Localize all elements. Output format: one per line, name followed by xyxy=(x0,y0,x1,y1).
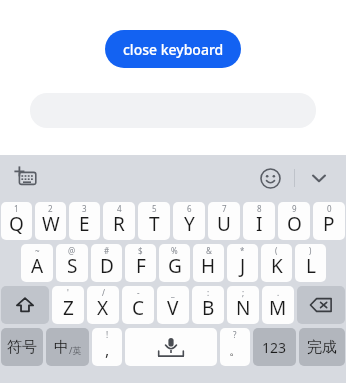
staticText: P xyxy=(323,211,335,237)
staticText: /英 xyxy=(69,344,82,356)
button[interactable]: 中 xyxy=(46,328,89,366)
button[interactable]: ; xyxy=(227,286,259,324)
staticText: 符号 xyxy=(7,338,37,357)
staticText: ~ xyxy=(35,245,40,256)
staticText: 中 xyxy=(54,338,69,357)
staticText: 123 xyxy=(262,338,287,357)
button[interactable]: 123 xyxy=(253,328,296,366)
button[interactable]: Shift xyxy=(1,286,49,324)
button[interactable]: 1 xyxy=(1,202,32,240)
button[interactable]: 符号 xyxy=(1,328,43,366)
staticText: A xyxy=(31,253,44,279)
button[interactable]: ! xyxy=(92,328,122,366)
staticText: * xyxy=(240,245,245,256)
button[interactable]: # xyxy=(91,244,122,282)
staticText: & xyxy=(206,245,212,256)
button[interactable]: 7 xyxy=(208,202,240,240)
staticText: 6 xyxy=(187,203,192,214)
staticText: , xyxy=(105,339,110,361)
staticText: % xyxy=(171,245,178,256)
button[interactable]: & xyxy=(193,244,224,282)
button[interactable]: 完成 xyxy=(299,328,345,366)
staticText: 7 xyxy=(222,203,227,214)
staticText: ( xyxy=(275,245,278,256)
staticText: Q xyxy=(9,211,24,237)
staticText: Z xyxy=(63,295,74,321)
staticText: N xyxy=(236,295,251,321)
staticText: R xyxy=(113,211,125,237)
staticText: I xyxy=(256,211,263,237)
staticText: # xyxy=(104,245,110,256)
staticText: _ xyxy=(171,287,175,298)
staticText: K xyxy=(271,253,283,279)
staticText: - xyxy=(137,287,140,298)
staticText: ? xyxy=(233,329,237,340)
button[interactable]: 8 xyxy=(243,202,275,240)
button[interactable]: _ xyxy=(157,286,189,324)
staticText: B xyxy=(202,295,215,321)
staticText: @ xyxy=(68,245,76,256)
staticText: 5 xyxy=(152,203,157,214)
staticText: 1 xyxy=(14,203,19,214)
button[interactable]: * xyxy=(227,244,258,282)
staticText: D xyxy=(100,253,114,279)
staticText: X xyxy=(97,295,109,321)
staticText: 4 xyxy=(117,203,122,214)
staticText: V xyxy=(167,295,179,321)
staticText: M xyxy=(269,295,287,321)
staticText: L xyxy=(306,253,316,279)
staticText: 。 xyxy=(229,342,242,358)
button[interactable]: close keyboard xyxy=(105,30,241,68)
staticText: J xyxy=(240,253,246,279)
staticText: 9 xyxy=(292,203,297,214)
staticText: O xyxy=(287,211,302,237)
staticText: W xyxy=(42,211,60,237)
button[interactable]: / xyxy=(87,286,119,324)
staticText: ! xyxy=(106,329,109,340)
staticText: / xyxy=(102,287,105,298)
staticText: 完成 xyxy=(307,338,337,357)
button[interactable]: 9 xyxy=(278,202,310,240)
staticText: S xyxy=(67,253,78,279)
button[interactable]: % xyxy=(159,244,190,282)
staticText: $ xyxy=(138,245,143,256)
button[interactable]: ' xyxy=(52,286,84,324)
staticText: . xyxy=(277,287,280,298)
button[interactable]: 5 xyxy=(138,202,170,240)
button[interactable]: : xyxy=(192,286,224,324)
staticText: Y xyxy=(184,211,195,237)
staticText: 8 xyxy=(257,203,262,214)
staticText: close keyboard xyxy=(123,40,224,59)
button[interactable]: ( xyxy=(261,244,292,282)
staticText: C xyxy=(132,295,145,321)
button[interactable]: 6 xyxy=(173,202,205,240)
button[interactable]: 3 xyxy=(69,202,100,240)
staticText: 3 xyxy=(82,203,87,214)
button[interactable]: 4 xyxy=(103,202,135,240)
button[interactable]: ~ xyxy=(21,244,53,282)
staticText: 2 xyxy=(48,203,53,214)
button[interactable]: Emoji xyxy=(253,161,287,195)
button[interactable]: ) xyxy=(295,244,326,282)
button[interactable]: 2 xyxy=(35,202,66,240)
staticText: F xyxy=(136,253,146,279)
staticText: G xyxy=(168,253,182,279)
button[interactable]: - xyxy=(122,286,154,324)
staticText: : xyxy=(207,287,210,298)
button[interactable]: ? xyxy=(220,328,250,366)
button[interactable]: 0 xyxy=(313,202,345,240)
button[interactable]: Keyboard settings xyxy=(10,161,44,195)
button[interactable]: Space, voice input xyxy=(125,328,217,366)
staticText: ; xyxy=(242,287,245,298)
button[interactable]: @ xyxy=(56,244,88,282)
staticText: 0 xyxy=(327,203,332,214)
button[interactable]: $ xyxy=(125,244,156,282)
staticText: E xyxy=(79,211,90,237)
staticText: T xyxy=(149,211,160,237)
button[interactable]: Backspace xyxy=(297,286,345,324)
button[interactable]: Hide keyboard xyxy=(302,161,336,195)
staticText: ) xyxy=(309,245,312,256)
staticText: ' xyxy=(67,287,69,298)
button[interactable]: . xyxy=(262,286,294,324)
